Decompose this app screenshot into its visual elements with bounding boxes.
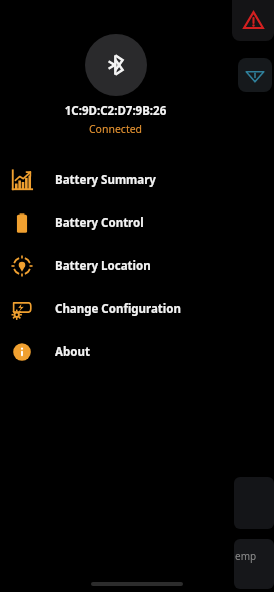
staticText: Battery Summary bbox=[55, 172, 156, 188]
button[interactable]: Battery Location bbox=[0, 244, 231, 287]
button[interactable]: Bluetooth device bbox=[85, 34, 147, 96]
staticText: emp bbox=[235, 549, 257, 563]
staticText: Battery Control bbox=[55, 215, 144, 231]
button[interactable]: Battery Summary bbox=[0, 158, 231, 201]
button[interactable]: Battery Control bbox=[0, 201, 231, 244]
button[interactable]: About bbox=[0, 330, 231, 373]
staticText: Battery Location bbox=[55, 258, 151, 274]
staticText: Change Configuration bbox=[55, 301, 181, 317]
staticText: Connected bbox=[0, 122, 231, 136]
staticText: 1C:9D:C2:D7:9B:26 bbox=[0, 103, 231, 119]
button[interactable]: Change Configuration bbox=[0, 287, 231, 330]
staticText: About bbox=[55, 344, 90, 360]
